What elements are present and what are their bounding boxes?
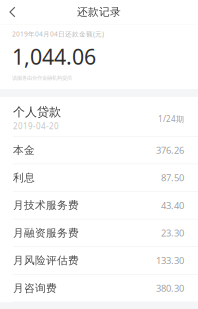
staticText: 本金 (13, 143, 35, 157)
staticText: 利息 (13, 171, 35, 184)
staticText: 133.30 (156, 254, 184, 267)
staticText: 87.50 (161, 171, 184, 184)
staticText: 376.26 (156, 144, 184, 156)
staticText: 月风险评估费 (13, 254, 79, 267)
staticText: 1,044.06 (12, 42, 96, 71)
staticText: 个人贷款 (13, 105, 61, 119)
staticText: 还款记录 (77, 5, 121, 18)
staticText: 23.30 (161, 227, 184, 239)
staticText: 43.40 (161, 199, 184, 211)
staticText: 月咨询费 (13, 281, 57, 295)
staticText: 该服务由合作金融机构提供 (12, 75, 72, 81)
staticText: 月融资服务费 (13, 226, 79, 239)
staticText: 2019-04-20 (13, 121, 59, 131)
staticText: 月技术服务费 (13, 199, 79, 212)
staticText: 1/24期 (158, 114, 184, 124)
button[interactable]: Back (0, 0, 25, 23)
staticText: 2019年04月04日还款金额(元) (12, 29, 104, 38)
staticText: 380.30 (156, 282, 184, 294)
